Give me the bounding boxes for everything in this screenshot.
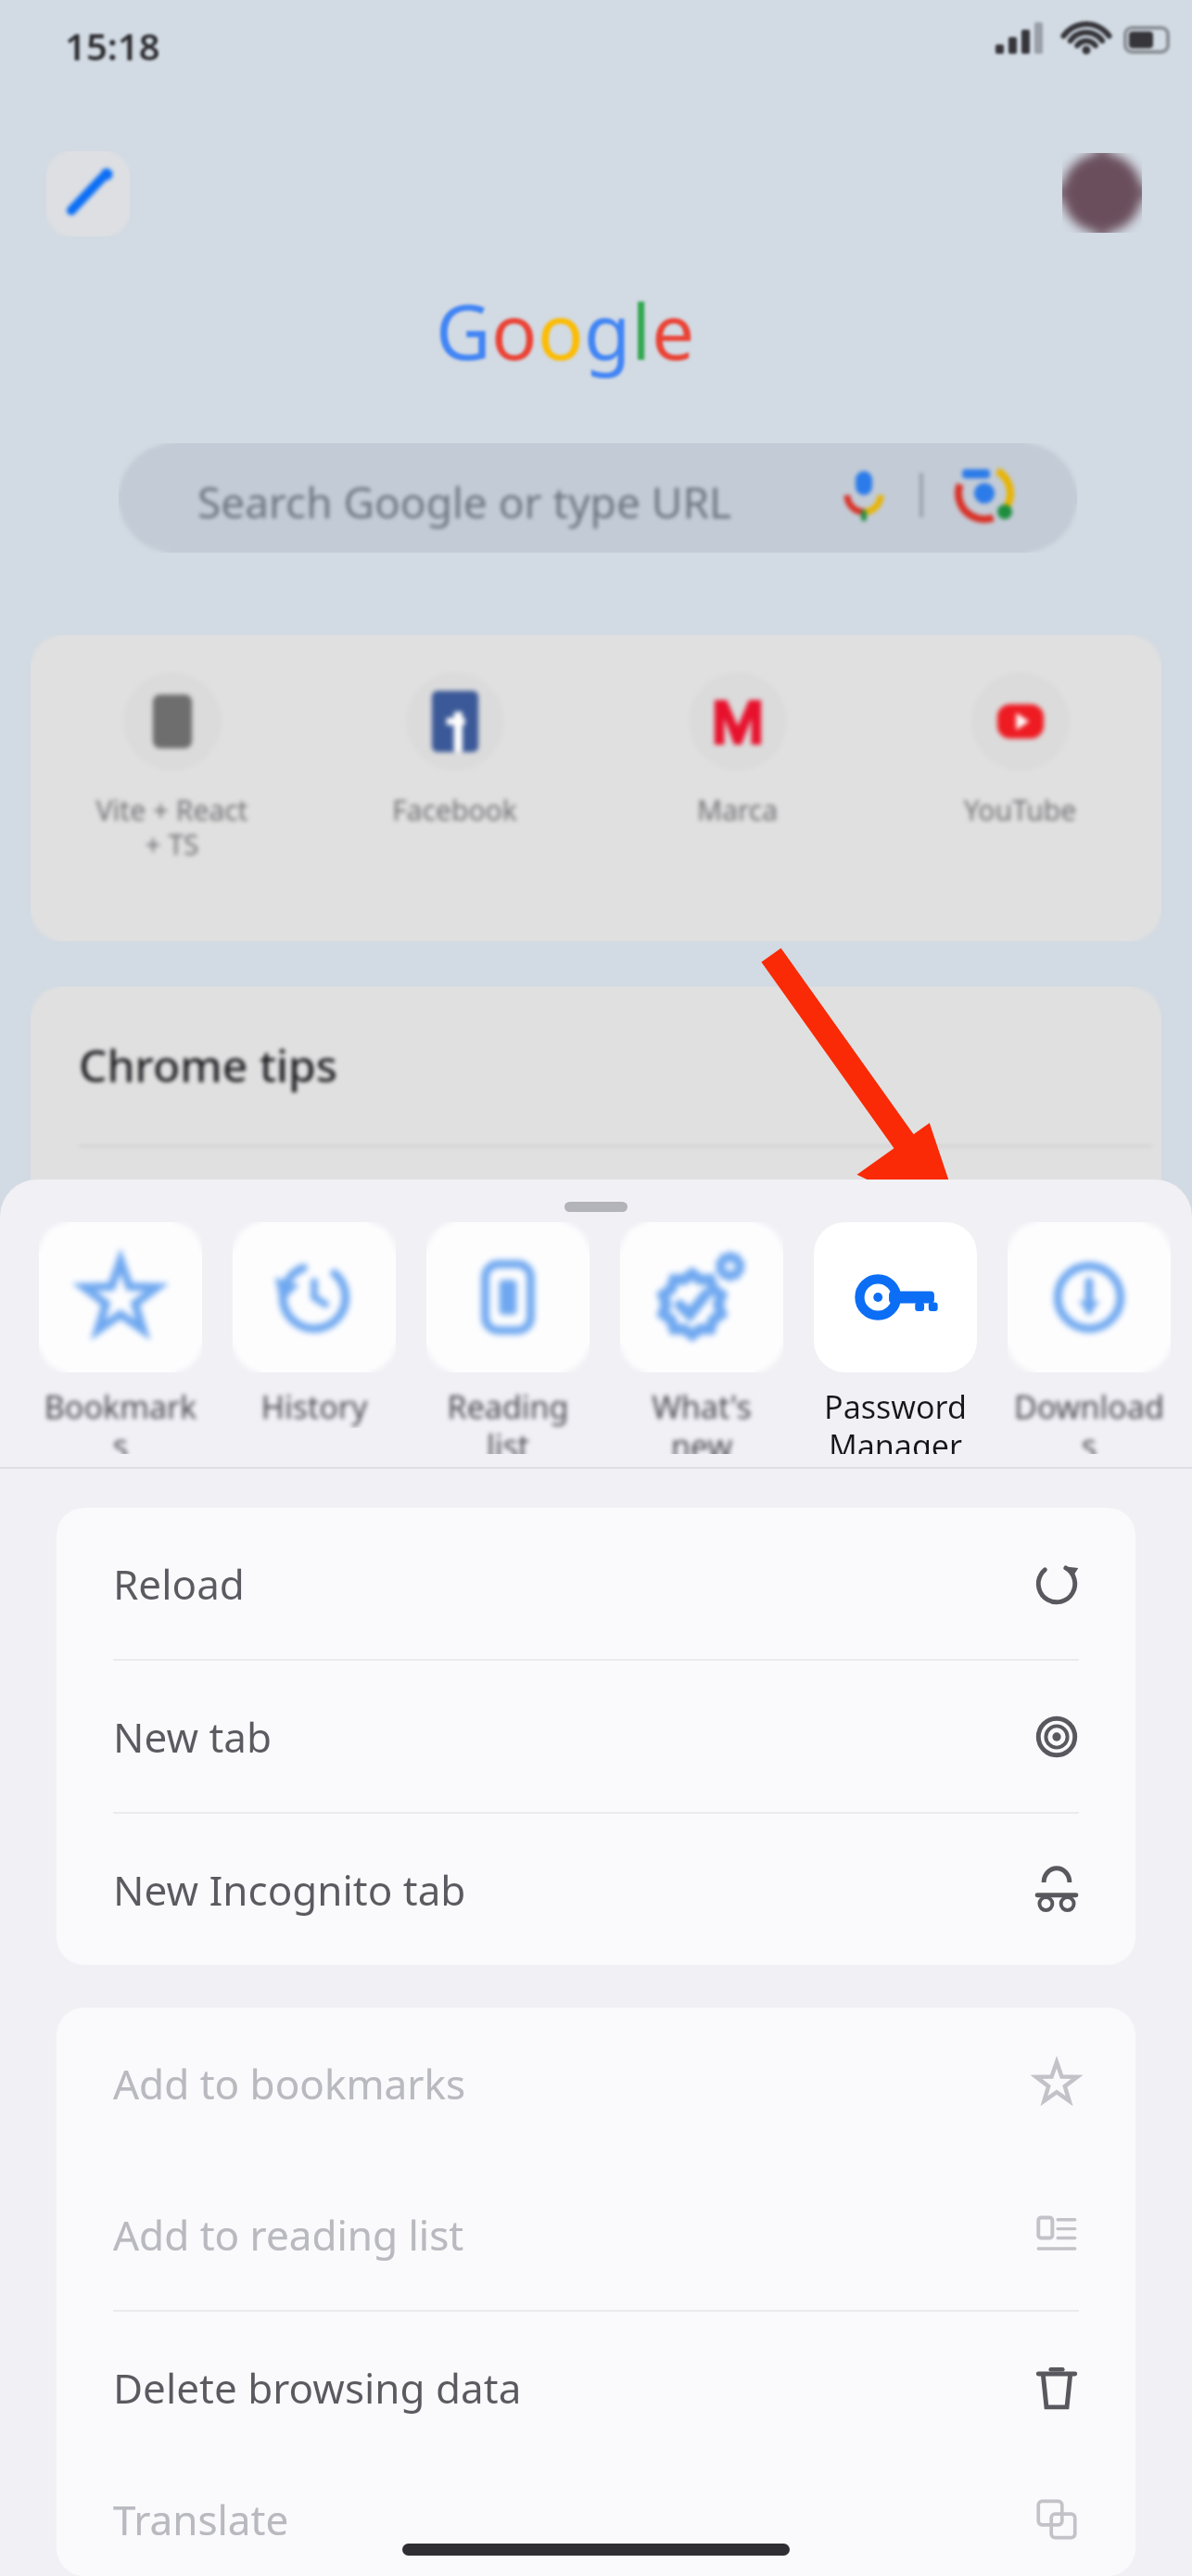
staticText: Bookmarks xyxy=(39,1385,202,1454)
staticText: Password Manager xyxy=(814,1385,977,1454)
button[interactable]: Account xyxy=(1062,153,1142,233)
staticText: o xyxy=(538,278,584,380)
button[interactable]: Search Google or type URL xyxy=(119,443,1077,553)
button[interactable]: Translate xyxy=(57,2463,1135,2576)
staticText: Search Google or type URL xyxy=(197,473,732,531)
staticText: YouTube xyxy=(879,791,1161,829)
button[interactable]: What's new xyxy=(620,1222,783,1454)
button[interactable]: Vite + React + TS xyxy=(31,672,313,863)
staticText: Reload xyxy=(113,1556,1030,1612)
staticText: Downloads xyxy=(1008,1385,1171,1454)
staticText: Reading list xyxy=(426,1385,590,1454)
button[interactable]: Downloads xyxy=(1008,1222,1171,1454)
staticText: 15:18 xyxy=(65,20,160,70)
staticText: What's new xyxy=(620,1385,783,1454)
staticText: Add to reading list xyxy=(113,2207,1030,2263)
button[interactable]: Add to bookmarks xyxy=(57,2008,1135,2159)
staticText: New tab xyxy=(113,1709,1030,1765)
staticText: l xyxy=(631,278,652,380)
button[interactable]: History xyxy=(233,1222,396,1428)
staticText: New Incognito tab xyxy=(113,1862,1030,1918)
staticText: e xyxy=(652,278,695,380)
button[interactable]: Delete browsing data xyxy=(57,2312,1135,2463)
button[interactable]: YouTube xyxy=(879,672,1161,829)
button[interactable]: Customise xyxy=(46,151,130,236)
staticText: Chrome tips xyxy=(79,1035,338,1095)
button[interactable]: Password Manager xyxy=(814,1222,977,1454)
button[interactable]: Marca xyxy=(596,672,879,829)
staticText: Delete browsing data xyxy=(113,2360,1030,2416)
staticText: Marca xyxy=(596,791,879,829)
staticText: Facebook xyxy=(313,791,596,829)
button[interactable]: Facebook xyxy=(313,672,596,829)
staticText: o xyxy=(491,278,538,380)
staticText: g xyxy=(584,278,631,380)
staticText: Vite + React + TS xyxy=(31,791,313,863)
staticText: Translate xyxy=(113,2492,1030,2547)
button[interactable]: Bookmarks xyxy=(39,1222,202,1454)
staticText: History xyxy=(233,1385,396,1428)
button[interactable]: New tab xyxy=(57,1661,1135,1812)
button[interactable]: New Incognito tab xyxy=(57,1814,1135,1965)
button[interactable]: Add to reading list xyxy=(57,2159,1135,2310)
button[interactable]: Reading list xyxy=(426,1222,590,1454)
button[interactable]: Reload xyxy=(57,1508,1135,1659)
staticText: G xyxy=(436,278,491,380)
staticText: Add to bookmarks xyxy=(113,2056,1030,2111)
